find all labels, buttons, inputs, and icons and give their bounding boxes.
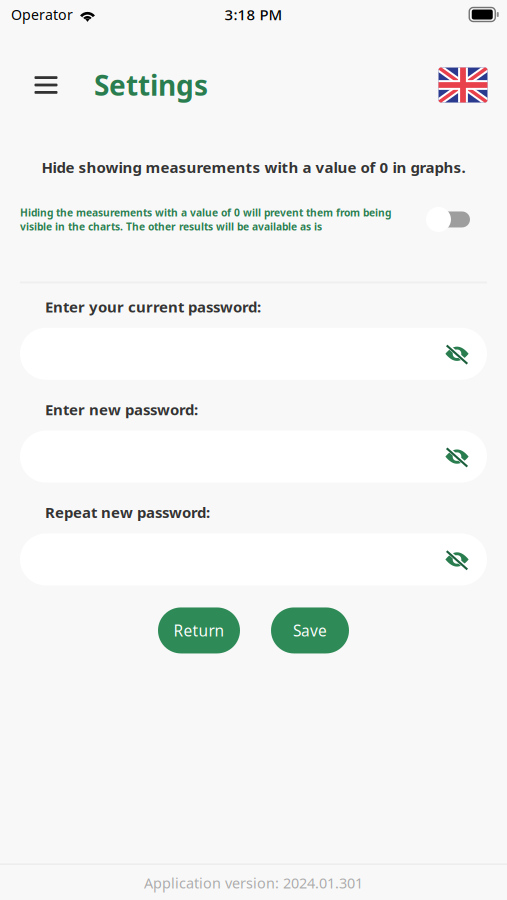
staticText: Save — [293, 620, 327, 641]
button[interactable]: Menu — [23, 57, 69, 113]
button[interactable]: Language — [435, 57, 491, 113]
button[interactable]: Hide zero measurements — [426, 206, 470, 232]
staticText: Enter new password: — [45, 399, 198, 420]
staticText: Hiding the measurements with a value of … — [20, 205, 391, 233]
staticText: Application version: 2024.01.301 — [144, 873, 363, 893]
staticText: 3:18 PM — [224, 4, 282, 25]
staticText: Return — [173, 620, 224, 641]
button[interactable]: Show password — [435, 533, 479, 585]
button[interactable]: Show password — [435, 328, 479, 380]
staticText: Hide showing measurements with a value o… — [41, 157, 465, 177]
staticText: Settings — [94, 66, 208, 104]
staticText: Operator — [11, 5, 73, 24]
staticText: Repeat new password: — [45, 502, 210, 522]
button[interactable]: Show password — [435, 431, 479, 483]
button[interactable]: Save — [271, 607, 349, 653]
staticText: Enter your current password: — [45, 296, 261, 317]
button[interactable]: Return — [158, 607, 240, 653]
